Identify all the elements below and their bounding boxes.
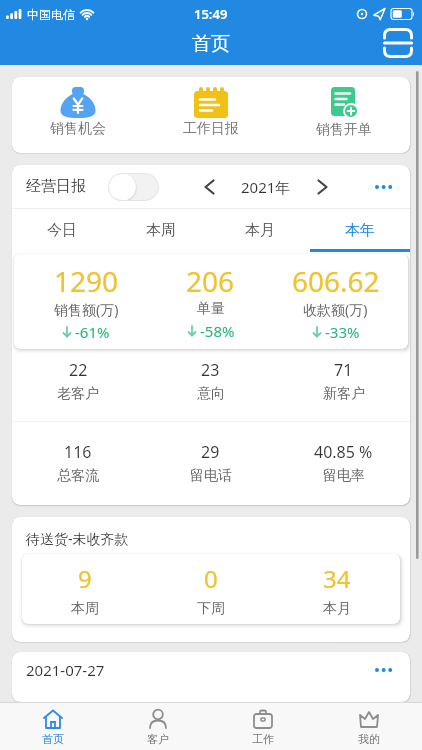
staticText: 销售额(万): [54, 300, 119, 319]
staticText: 新客户: [323, 385, 365, 403]
staticText: 9: [78, 562, 92, 595]
button[interactable]: 本月: [210, 209, 310, 252]
staticText: 本月: [323, 600, 351, 616]
staticText: 留电率: [323, 467, 365, 485]
button[interactable]: 首页: [0, 703, 105, 750]
staticText: 2021年: [241, 177, 291, 197]
staticText: -33%: [325, 322, 360, 341]
staticText: 本周: [146, 221, 176, 240]
staticText: 0: [204, 562, 218, 595]
button[interactable]: [108, 173, 159, 201]
button[interactable]: [383, 28, 413, 58]
staticText: 意向: [197, 385, 225, 403]
button[interactable]: [317, 179, 328, 195]
staticText: 本周: [71, 600, 99, 616]
staticText: 工作日报: [183, 120, 239, 138]
button[interactable]: [374, 179, 394, 195]
button[interactable]: 今日: [12, 209, 111, 252]
staticText: 22: [69, 359, 88, 381]
staticText: 单量: [197, 300, 225, 318]
staticText: 2021-07-27: [26, 660, 105, 680]
button[interactable]: 我的: [316, 703, 422, 750]
staticText: 71: [334, 359, 353, 381]
button[interactable]: 工作: [210, 703, 316, 750]
staticText: 下周: [197, 600, 225, 616]
button[interactable]: 客户: [105, 703, 210, 750]
staticText: 116: [64, 441, 92, 463]
staticText: 23: [201, 359, 220, 381]
staticText: 我的: [358, 732, 380, 746]
staticText: 206: [186, 262, 235, 300]
staticText: 首页: [192, 32, 230, 56]
staticText: 中国电信: [27, 7, 75, 22]
staticText: 老客户: [57, 385, 99, 403]
staticText: 工作: [252, 732, 274, 746]
staticText: 34: [323, 562, 351, 595]
staticText: 40.85 %: [314, 441, 373, 463]
staticText: 1290: [54, 262, 119, 300]
staticText: 本月: [245, 221, 275, 240]
button[interactable]: [204, 179, 215, 195]
button[interactable]: 工作日报: [144, 77, 277, 153]
staticText: 留电话: [190, 467, 232, 485]
button[interactable]: 销售机会: [12, 77, 144, 153]
staticText: -61%: [75, 322, 110, 341]
staticText: 收款额(万): [303, 300, 368, 319]
staticText: 606.62: [292, 262, 380, 300]
button[interactable]: [374, 662, 394, 678]
staticText: 销售机会: [50, 120, 106, 138]
staticText: 本年: [345, 221, 375, 240]
staticText: 经营日报: [26, 177, 86, 196]
staticText: -58%: [200, 321, 235, 341]
button[interactable]: 本周: [111, 209, 210, 252]
staticText: 今日: [47, 221, 77, 240]
staticText: 首页: [42, 732, 64, 746]
staticText: 销售开单: [316, 121, 372, 139]
button[interactable]: 本年: [310, 209, 410, 252]
button[interactable]: 销售开单: [277, 77, 410, 153]
staticText: 总客流: [57, 467, 99, 485]
staticText: 待送货-未收齐款: [26, 529, 129, 548]
staticText: 29: [201, 441, 220, 463]
staticText: 客户: [147, 732, 169, 746]
staticText: 15:49: [194, 5, 228, 23]
